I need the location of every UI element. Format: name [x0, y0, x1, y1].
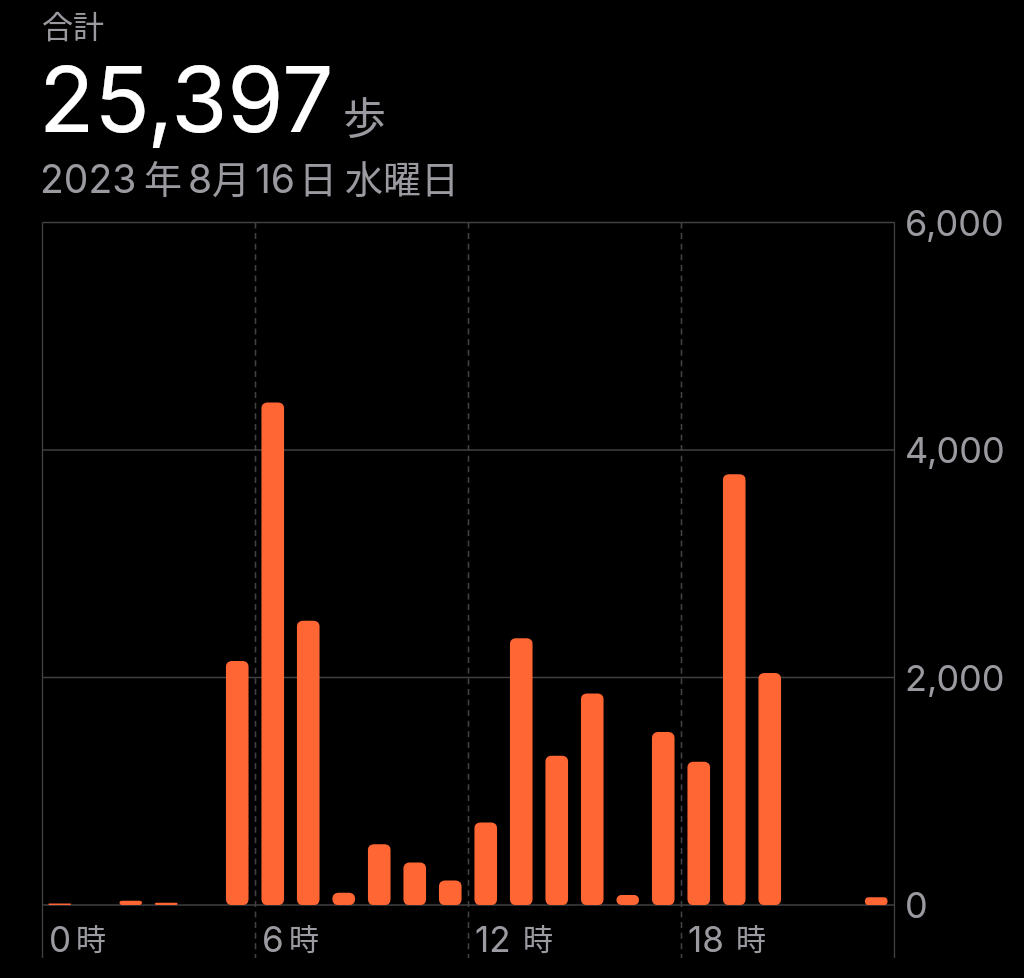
button[interactable]: 歩数グラフ — [43, 223, 895, 906]
staticText: 月 — [212, 149, 251, 204]
staticText: 曜 — [383, 149, 422, 204]
staticText: 年 — [144, 149, 183, 204]
staticText: 時 — [523, 915, 553, 958]
staticText: 時 — [736, 915, 766, 958]
staticText: 合計 — [42, 2, 104, 47]
staticText: 0 — [49, 918, 72, 960]
staticText: 0 — [905, 883, 928, 927]
staticText: 水 — [345, 149, 384, 204]
staticText: 時 — [289, 915, 319, 958]
staticText: 25,397 — [39, 44, 334, 154]
staticText: 8 — [188, 155, 213, 202]
button[interactable] — [30, 0, 450, 200]
staticText: 6 — [262, 918, 284, 960]
staticText: 日 — [299, 149, 338, 204]
staticText: 4,000 — [905, 428, 1005, 472]
staticText: 日 — [421, 149, 460, 204]
staticText: 6,000 — [905, 201, 1004, 245]
staticText: 歩 — [343, 84, 386, 146]
staticText: 12 — [475, 918, 511, 960]
staticText: 18 — [688, 918, 724, 960]
staticText: 2,000 — [905, 656, 1005, 700]
staticText: 2023 — [40, 155, 137, 202]
staticText: 16 — [255, 155, 296, 202]
staticText: 時 — [76, 915, 106, 958]
